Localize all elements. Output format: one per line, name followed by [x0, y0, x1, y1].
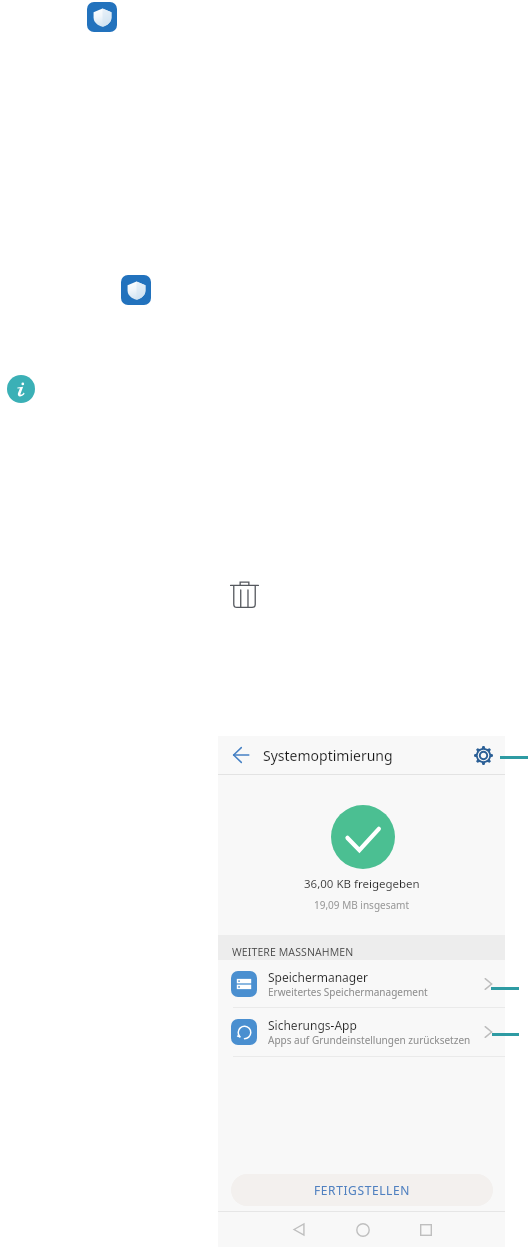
staticText: Erweitertes Speichermanagement [268, 985, 428, 999]
button[interactable]: Recents [394, 1212, 457, 1247]
staticText: FERTIGSTELLEN [314, 1182, 410, 1198]
staticText: 19,09 MB insgesamt [314, 898, 410, 912]
button[interactable]: Back [268, 1212, 331, 1247]
button[interactable]: Settings [461, 736, 505, 774]
staticText: Speichermanager [268, 969, 368, 985]
staticText: Systemoptimierung [263, 746, 393, 765]
staticText: WEITERE MASSNAHMEN [232, 945, 354, 959]
staticText: Sicherungs-App [268, 1017, 357, 1033]
button[interactable]: FERTIGSTELLEN [231, 1174, 493, 1206]
button[interactable]: Sicherungs-App [218, 1008, 505, 1056]
staticText: Apps auf Grundeinstellungen zurücksetzen [268, 1033, 471, 1047]
button[interactable]: Back [218, 736, 263, 774]
button[interactable]: Home [331, 1212, 394, 1247]
staticText: 36,00 KB freigegeben [304, 876, 420, 892]
button[interactable]: Speichermanager [218, 961, 505, 1007]
